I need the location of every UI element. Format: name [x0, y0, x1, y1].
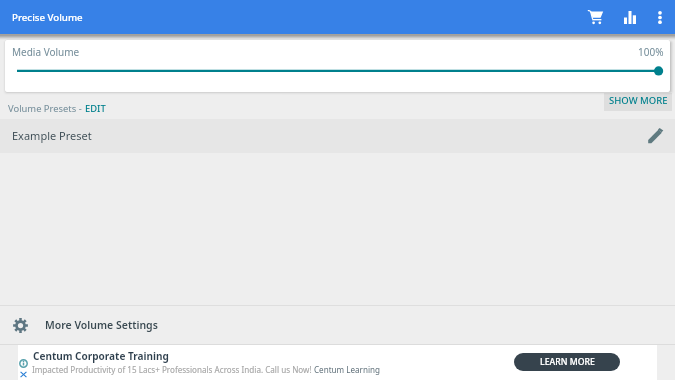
button[interactable]: More Volume Settings	[0, 306, 675, 344]
staticText: Volume Presets -	[8, 102, 85, 115]
button[interactable]: Close ad	[20, 371, 27, 378]
button[interactable]: EDIT	[85, 102, 106, 115]
button[interactable]: LEARN MORE	[514, 353, 620, 371]
button[interactable]: Example Preset	[0, 119, 675, 153]
staticText: Impacted Productivity of 15 Lacs+ Profes…	[32, 364, 314, 375]
staticText: Media Volume	[12, 45, 80, 59]
staticText: SHOW MORE	[609, 94, 668, 107]
staticText: 100%	[638, 45, 664, 59]
staticText: LEARN MORE	[540, 356, 595, 368]
staticText: Example Preset	[12, 128, 92, 143]
staticText: Centum Corporate Training	[33, 349, 169, 363]
button[interactable]: More options	[644, 0, 675, 34]
staticText: EDIT	[85, 102, 106, 115]
button[interactable]: SHOW MORE	[604, 93, 672, 111]
button[interactable]: Edit preset	[639, 120, 672, 153]
staticText: More Volume Settings	[45, 318, 158, 332]
staticText: Centum Learning	[314, 364, 381, 375]
staticText: Precise Volume	[12, 11, 83, 24]
button[interactable]: Equalizer	[616, 0, 644, 34]
button[interactable]: Ad info	[19, 359, 28, 368]
button[interactable]: Shop	[576, 0, 616, 34]
